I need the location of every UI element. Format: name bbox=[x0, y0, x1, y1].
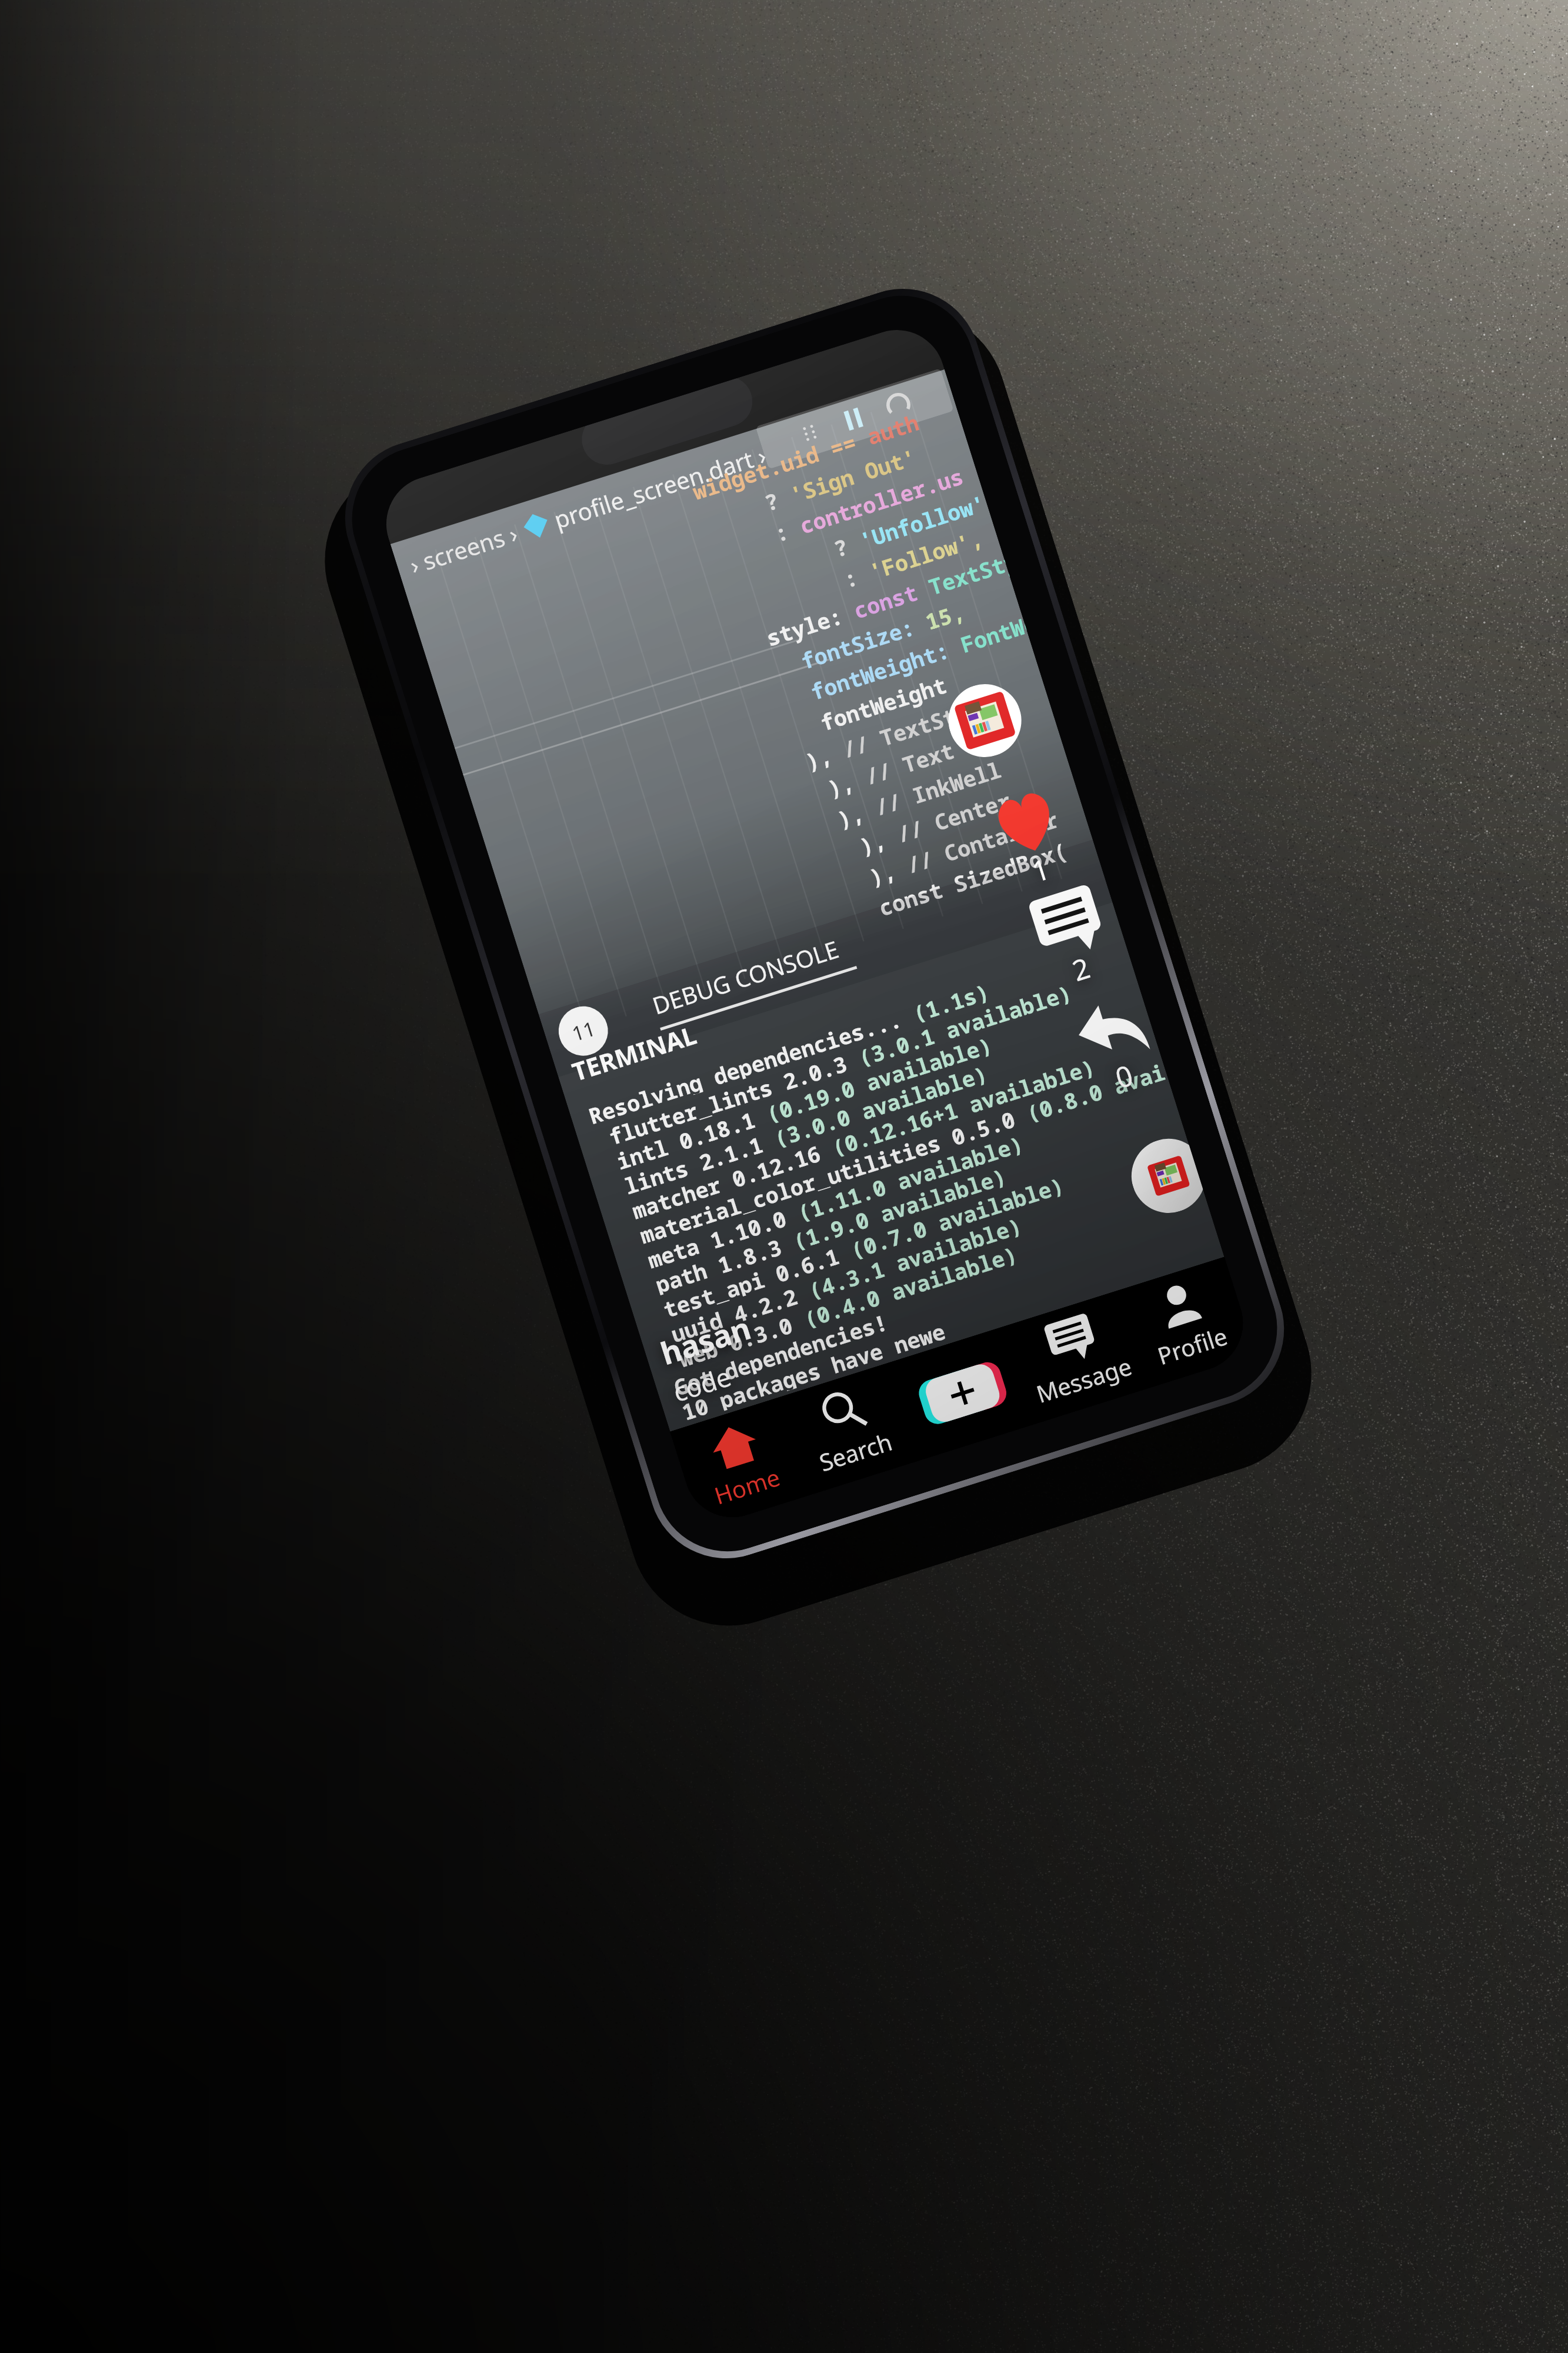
button[interactable]: Create bbox=[902, 1344, 1024, 1443]
staticText: ), bbox=[796, 793, 880, 845]
staticText: web 0.3.0 bbox=[663, 1306, 808, 1374]
staticText: matcher 0.12.16 bbox=[616, 1134, 836, 1226]
staticText: TERMINAL bbox=[568, 1018, 700, 1088]
button[interactable]: Like bbox=[985, 782, 1068, 865]
staticText: fontWeight: bbox=[757, 631, 966, 722]
staticText: meta 1.10.0 bbox=[631, 1199, 801, 1275]
staticText: ), bbox=[806, 820, 902, 876]
staticText: (1.11.0 available) bbox=[794, 1128, 1026, 1224]
staticText: Got dependencies! bbox=[670, 1307, 890, 1398]
staticText: (3.0.0 available) bbox=[770, 1058, 990, 1150]
staticText: 11 bbox=[569, 1015, 599, 1047]
staticText: 0 bbox=[1111, 1055, 1138, 1097]
staticText: controller.us bbox=[796, 461, 967, 540]
staticText: const bbox=[850, 573, 934, 625]
staticText: Message bbox=[1032, 1350, 1135, 1410]
staticText: // Center bbox=[893, 785, 1014, 848]
staticText: hasan bbox=[655, 1306, 756, 1374]
staticText: style: bbox=[737, 597, 859, 660]
staticText: 2 bbox=[1067, 948, 1095, 989]
staticText: 'Follow', bbox=[865, 522, 986, 586]
staticText: 10 packages have newe bbox=[678, 1316, 948, 1423]
staticText: Search bbox=[815, 1425, 896, 1478]
staticText: uuid 4.2.2 bbox=[655, 1277, 812, 1349]
staticText: // Text bbox=[861, 735, 958, 791]
staticText: ), bbox=[776, 736, 848, 784]
staticText: 15, bbox=[922, 596, 968, 636]
staticText: ? bbox=[718, 527, 864, 598]
staticText: (3.0.1 available) bbox=[854, 977, 1074, 1069]
staticText: // InkWell bbox=[871, 754, 1004, 822]
staticText: TextSty bbox=[925, 549, 1010, 601]
staticText: (0.8.0 avai bbox=[1022, 1056, 1168, 1124]
button[interactable]: Comments bbox=[1026, 882, 1109, 965]
staticText: code bbox=[669, 1358, 735, 1410]
button[interactable]: Search bbox=[778, 1363, 918, 1495]
staticText: test_api 0.6.1 bbox=[647, 1237, 854, 1324]
staticText: ), bbox=[815, 851, 912, 907]
button[interactable]: Message bbox=[1007, 1291, 1146, 1423]
staticText: fontSize: bbox=[747, 608, 931, 691]
staticText: fontWeight bbox=[767, 670, 950, 753]
staticText: (0.12.16+1 available) bbox=[828, 1051, 1098, 1159]
staticText: : bbox=[708, 512, 805, 568]
staticText: 1 bbox=[1027, 849, 1054, 891]
staticText: FontWe bbox=[957, 611, 1029, 659]
staticText: auth bbox=[863, 407, 922, 451]
staticText: 'Unfollow' bbox=[855, 488, 989, 555]
button[interactable]: Home bbox=[670, 1398, 809, 1529]
staticText: (1.9.0 available) bbox=[789, 1161, 1009, 1252]
staticText: (4.3.1 available) bbox=[805, 1210, 1024, 1302]
staticText: // Container bbox=[903, 804, 1061, 879]
staticText: lints 2.1.1 bbox=[608, 1125, 778, 1201]
staticText: : bbox=[728, 558, 874, 629]
staticText: intl 0.18.1 bbox=[600, 1100, 770, 1176]
button[interactable]: Profile picture bbox=[939, 675, 1031, 766]
staticText: DEBUG CONSOLE bbox=[648, 933, 842, 1021]
button[interactable]: Share bbox=[1069, 989, 1152, 1072]
staticText: ), bbox=[786, 763, 870, 814]
button[interactable]: Profile bbox=[1115, 1257, 1255, 1389]
staticText: material_color_utilities 0.5.0 bbox=[624, 1100, 1030, 1250]
staticText: Profile bbox=[1153, 1319, 1231, 1371]
staticText: profile_screen.dart › bbox=[550, 439, 770, 535]
staticText: // TextStyle bbox=[839, 689, 997, 764]
button[interactable]: Sound bbox=[1122, 1132, 1207, 1222]
staticText: path 1.8.3 bbox=[639, 1228, 797, 1300]
staticText: Resolving dependencies... bbox=[585, 1000, 917, 1127]
staticText: 'Sign Out' bbox=[786, 442, 920, 509]
staticText: (0.7.0 available) bbox=[847, 1170, 1066, 1261]
staticText: (0.4.0 available) bbox=[800, 1239, 1020, 1330]
staticText: const SizedBox( bbox=[825, 835, 1071, 938]
staticText: › screens › bbox=[406, 517, 521, 581]
staticText: ? bbox=[699, 481, 795, 537]
staticText: flutter_lints 2.0.3 bbox=[592, 1044, 862, 1151]
staticText: Home bbox=[710, 1461, 784, 1511]
staticText: (0.19.0 available) bbox=[762, 1030, 995, 1125]
staticText: widget.uid == bbox=[689, 423, 872, 506]
staticText: (1.1s) bbox=[909, 976, 992, 1025]
